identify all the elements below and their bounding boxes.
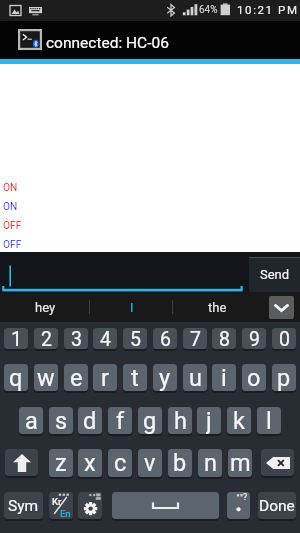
button[interactable]: b — [168, 449, 192, 477]
staticText: ? — [243, 492, 248, 503]
staticText: m — [230, 449, 251, 477]
button[interactable]: App icon — [18, 29, 42, 50]
button[interactable]: Keyboard settings — [78, 492, 102, 519]
staticText: d — [83, 407, 97, 434]
button[interactable]: Change language — [49, 492, 73, 519]
staticText: j — [206, 407, 212, 434]
staticText: s — [55, 407, 68, 434]
staticText: connected: HC-06 — [46, 34, 169, 52]
staticText: g — [143, 407, 157, 434]
button[interactable]: i — [212, 364, 236, 391]
button[interactable]: the — [173, 292, 262, 322]
button[interactable]: q — [4, 364, 28, 391]
staticText: a — [25, 407, 38, 434]
staticText: h — [174, 407, 187, 434]
button[interactable]: Send — [249, 257, 300, 292]
button[interactable]: g — [138, 407, 162, 434]
button[interactable]: f — [108, 407, 132, 434]
button[interactable]: 2 — [34, 328, 58, 349]
button[interactable]: s — [49, 407, 73, 434]
button[interactable]: k — [227, 407, 251, 434]
button[interactable]: Done — [258, 492, 296, 519]
staticText: l — [266, 407, 272, 434]
button[interactable]: 3 — [64, 328, 88, 349]
staticText: the — [208, 300, 227, 315]
button[interactable]: z — [49, 449, 73, 477]
button[interactable]: 1 — [4, 328, 28, 349]
staticText: Kr — [52, 496, 62, 507]
button[interactable]: 5 — [123, 328, 147, 349]
button[interactable]: x — [78, 449, 102, 477]
staticText: 9 — [249, 328, 260, 349]
staticText: 2 — [41, 328, 52, 349]
staticText: ON — [3, 182, 18, 194]
button[interactable]: Expand suggestions — [269, 296, 294, 319]
button[interactable]: d — [78, 407, 102, 434]
staticText: u — [189, 364, 202, 391]
staticText: Sym — [8, 497, 39, 515]
button[interactable]: a — [19, 407, 43, 434]
staticText: 10:21 PM — [237, 3, 299, 16]
staticText: o — [247, 364, 261, 391]
staticText: k — [233, 407, 245, 434]
staticText: 64% — [199, 4, 218, 16]
button[interactable]: n — [198, 449, 222, 477]
staticText: En — [60, 508, 71, 519]
staticText: 3 — [71, 328, 82, 349]
button[interactable]: Shift — [5, 449, 38, 476]
button[interactable]: Backspace — [261, 449, 294, 476]
button[interactable]: Space — [112, 492, 219, 519]
staticText: 4 — [100, 328, 111, 349]
button[interactable]: l — [257, 407, 281, 434]
staticText: Done — [259, 497, 295, 515]
button[interactable]: m — [228, 449, 252, 477]
button[interactable]: 9 — [242, 328, 266, 349]
staticText: OFF — [3, 239, 22, 251]
button[interactable]: c — [108, 449, 132, 477]
button[interactable]: 8 — [212, 328, 236, 349]
staticText: b — [173, 449, 187, 477]
staticText: f — [116, 407, 125, 434]
staticText: 7 — [190, 328, 201, 349]
button[interactable]: 6 — [153, 328, 177, 349]
button[interactable]: v — [138, 449, 162, 477]
button[interactable]: r — [93, 364, 117, 391]
staticText: y — [159, 364, 171, 391]
staticText: Send — [260, 267, 290, 282]
staticText: c — [114, 449, 127, 477]
button[interactable]: u — [183, 364, 207, 391]
staticText: t — [131, 364, 139, 391]
staticText: ON — [3, 201, 18, 213]
button[interactable]: Sym — [4, 492, 43, 519]
staticText: 6 — [160, 328, 171, 349]
button[interactable] — [0, 252, 300, 292]
staticText: q — [9, 364, 23, 391]
button[interactable]: p — [272, 364, 296, 391]
staticText: i — [221, 364, 227, 391]
staticText: 1 — [11, 328, 22, 349]
button[interactable]: j — [197, 407, 221, 434]
button[interactable]: h — [168, 407, 192, 434]
staticText: n — [204, 449, 217, 477]
staticText: OFF — [3, 220, 22, 232]
button[interactable]: y — [153, 364, 177, 391]
button[interactable]: o — [242, 364, 266, 391]
button[interactable]: I — [90, 292, 173, 322]
button[interactable]: Period — [227, 492, 250, 519]
staticText: 0 — [279, 328, 290, 349]
staticText: z — [55, 449, 67, 477]
staticText: v — [144, 449, 156, 477]
staticText: x — [84, 449, 96, 477]
button[interactable]: 7 — [183, 328, 207, 349]
staticText: hey — [35, 300, 56, 315]
button[interactable]: hey — [2, 292, 89, 322]
staticText: 8 — [219, 328, 230, 349]
staticText: r — [101, 364, 109, 391]
button[interactable]: e — [64, 364, 88, 391]
button[interactable]: 4 — [93, 328, 117, 349]
staticText: w — [37, 364, 55, 391]
button[interactable]: t — [123, 364, 147, 391]
staticText: 5 — [130, 328, 141, 349]
button[interactable]: 0 — [272, 328, 296, 349]
button[interactable]: w — [34, 364, 58, 391]
